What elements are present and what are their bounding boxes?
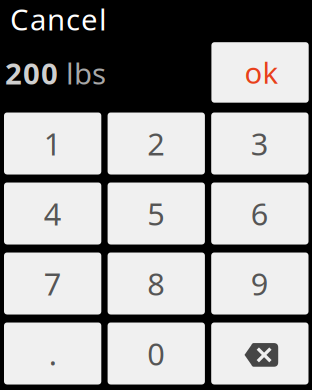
- staticText: Cancel: [10, 0, 107, 38]
- staticText: 7: [44, 263, 62, 304]
- button[interactable]: 1: [4, 112, 101, 174]
- staticText: .: [49, 333, 57, 374]
- button[interactable]: 2: [108, 112, 205, 174]
- button[interactable]: 9: [211, 252, 308, 314]
- staticText: 2: [147, 123, 165, 164]
- button[interactable]: ok: [211, 42, 309, 103]
- button[interactable]: 6: [211, 182, 308, 244]
- staticText: 6: [251, 193, 269, 234]
- staticText: 0: [147, 333, 165, 374]
- staticText: ok: [245, 53, 279, 92]
- button[interactable]: Delete: [211, 322, 308, 384]
- button[interactable]: 0: [108, 322, 205, 384]
- staticText: 200: [5, 53, 58, 92]
- button[interactable]: 4: [4, 182, 101, 244]
- button[interactable]: .: [4, 322, 101, 384]
- button[interactable]: 8: [108, 252, 205, 314]
- staticText: lbs: [66, 53, 106, 92]
- staticText: 1: [44, 123, 62, 164]
- staticText: 9: [251, 263, 269, 304]
- button[interactable]: Cancel: [10, 2, 120, 36]
- staticText: 3: [251, 123, 269, 164]
- button[interactable]: 5: [108, 182, 205, 244]
- button[interactable]: 3: [211, 112, 308, 174]
- staticText: 5: [147, 193, 165, 234]
- staticText: 8: [147, 263, 165, 304]
- staticText: 4: [44, 193, 62, 234]
- button[interactable]: 7: [4, 252, 101, 314]
